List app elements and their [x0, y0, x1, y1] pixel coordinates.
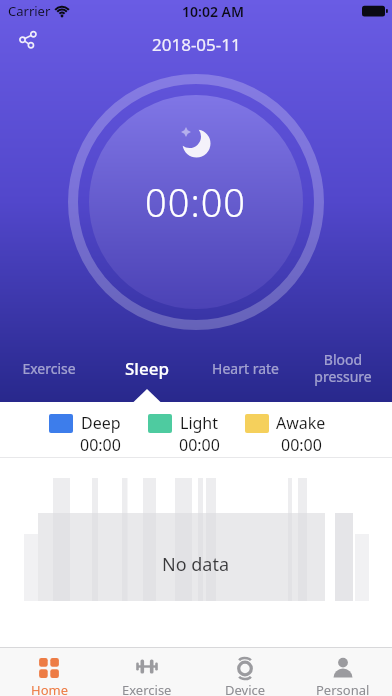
staticText: No data [162, 552, 230, 577]
staticText: Home [31, 681, 68, 696]
staticText: Sleep [125, 357, 169, 380]
staticText: 2018-05-11 [152, 33, 241, 56]
button[interactable]: Home [0, 648, 98, 696]
staticText: Heart rate [212, 359, 279, 378]
button[interactable]: Exercise [0, 341, 98, 395]
staticText: Exercise [122, 681, 172, 696]
button[interactable] [14, 26, 42, 54]
staticText: 00:00 [179, 434, 220, 456]
button[interactable]: Device [196, 648, 294, 696]
button[interactable]: Blood pressure [294, 341, 392, 395]
staticText: Carrier [8, 2, 51, 20]
staticText: Blood pressure [314, 350, 372, 386]
staticText: Device [225, 681, 266, 696]
button[interactable]: Exercise [98, 648, 196, 696]
staticText: Deep [81, 412, 121, 434]
staticText: Awake [276, 412, 326, 434]
staticText: 10:02 AM [182, 2, 244, 21]
staticText: 00:00 [145, 176, 247, 228]
staticText: Personal [316, 681, 370, 696]
staticText: 00:00 [80, 434, 121, 456]
staticText: 00:00 [281, 434, 322, 456]
staticText: Light [180, 412, 219, 434]
button[interactable]: Heart rate [196, 341, 294, 395]
button[interactable]: Personal [294, 648, 392, 696]
button[interactable]: Sleep [98, 341, 196, 395]
staticText: Exercise [22, 359, 76, 378]
